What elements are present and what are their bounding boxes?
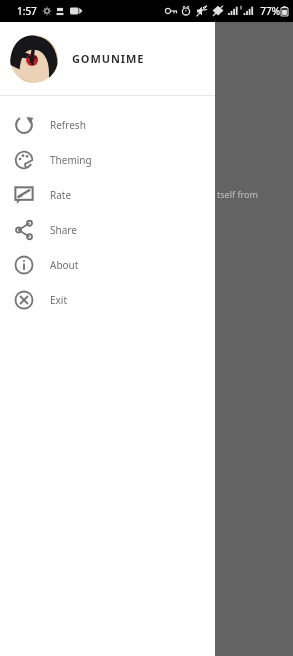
button[interactable]: Rate	[0, 177, 215, 212]
button[interactable]: Share	[0, 212, 215, 247]
staticText: Share	[50, 223, 77, 237]
staticText: Theming	[50, 153, 92, 167]
staticText: Rate	[50, 188, 72, 202]
button[interactable]: Exit	[0, 282, 215, 317]
staticText: tself from	[217, 188, 258, 200]
staticText: Exit	[50, 293, 68, 307]
staticText: Refresh	[50, 118, 86, 132]
staticText: About	[50, 258, 79, 272]
button[interactable]: Refresh	[0, 107, 215, 142]
button[interactable]: Theming	[0, 142, 215, 177]
button[interactable]: About	[0, 247, 215, 282]
button[interactable]: GOMUNIME	[0, 22, 215, 95]
staticText: GOMUNIME	[72, 51, 145, 66]
staticText: 77%	[260, 4, 280, 18]
staticText: 1:57	[17, 4, 37, 18]
